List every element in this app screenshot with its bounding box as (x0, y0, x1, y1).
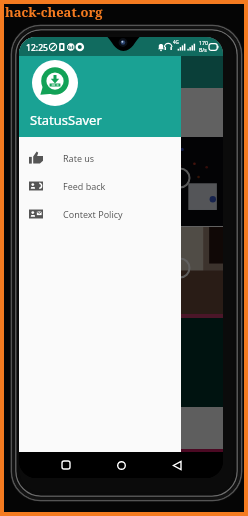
staticText: 170 (199, 39, 208, 46)
staticText: Context Policy (63, 208, 123, 220)
staticText: Feed back (63, 180, 106, 192)
button[interactable]: Context Policy (19, 200, 181, 228)
staticText: Rate us (63, 152, 95, 164)
staticText: hack-cheat.org (5, 3, 103, 21)
staticText: 4G (173, 39, 179, 45)
button[interactable]: Feed back (19, 172, 181, 200)
button[interactable]: Rate us (19, 144, 181, 172)
staticText: 12:25 (26, 42, 49, 54)
button[interactable]: Back (168, 456, 186, 474)
button[interactable]: Home (112, 456, 130, 474)
staticText: B/s (199, 46, 207, 53)
button[interactable]: Recents (57, 456, 75, 474)
staticText: StatusSaver (30, 111, 102, 129)
